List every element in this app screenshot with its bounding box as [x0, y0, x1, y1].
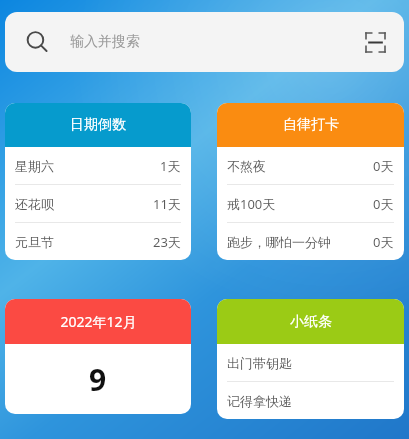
staticText: 输入并搜索 — [70, 33, 140, 51]
button[interactable]: 不熬夜 — [217, 147, 404, 184]
staticText: 星期六 — [15, 158, 54, 174]
staticText: 0天 — [373, 233, 394, 251]
button[interactable]: 跑步，哪怕一分钟 — [217, 223, 404, 260]
button[interactable]: 日期倒数 — [5, 103, 191, 147]
staticText: 1天 — [160, 157, 181, 175]
staticText: 元旦节 — [15, 234, 54, 250]
button[interactable]: 9 — [5, 344, 191, 414]
staticText: 0天 — [373, 157, 394, 175]
button[interactable]: 小纸条 — [217, 299, 404, 344]
staticText: 2022年12月 — [60, 312, 137, 331]
staticText: 记得拿快递 — [227, 393, 292, 409]
staticText: 0天 — [373, 195, 394, 213]
button[interactable]: 出门带钥匙 — [217, 344, 404, 381]
staticText: 戒100天 — [227, 195, 276, 213]
staticText: 不熬夜 — [227, 158, 266, 174]
staticText: 日期倒数 — [70, 116, 126, 134]
staticText: 23天 — [153, 233, 181, 251]
button[interactable]: 还花呗 — [5, 185, 191, 222]
staticText: 出门带钥匙 — [227, 355, 292, 371]
staticText: 还花呗 — [15, 196, 54, 212]
button[interactable]: Scan — [363, 30, 387, 54]
button[interactable]: 输入并搜索 — [5, 12, 404, 72]
button[interactable]: 戒100天 — [217, 185, 404, 222]
staticText: 小纸条 — [290, 313, 332, 331]
button[interactable]: 记得拿快递 — [217, 382, 404, 419]
button[interactable]: 自律打卡 — [217, 103, 404, 147]
button[interactable]: 元旦节 — [5, 223, 191, 260]
button[interactable]: 星期六 — [5, 147, 191, 184]
staticText: 跑步，哪怕一分钟 — [227, 234, 331, 250]
staticText: 自律打卡 — [283, 116, 339, 134]
staticText: 11天 — [153, 195, 181, 213]
button[interactable]: 2022年12月 — [5, 299, 191, 344]
staticText: 9 — [89, 359, 107, 400]
